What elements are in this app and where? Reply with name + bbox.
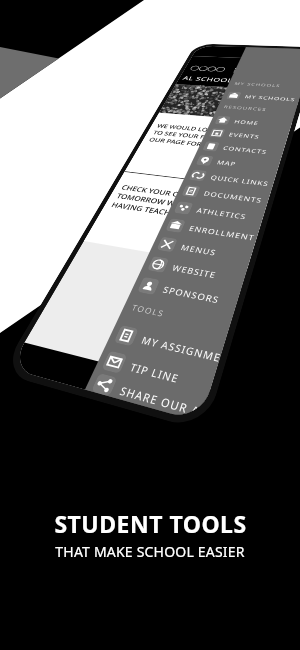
staticText: MENUS bbox=[179, 242, 218, 258]
staticText: MY SCHOOLS bbox=[233, 81, 282, 89]
button[interactable]: ATHLETICS bbox=[167, 197, 266, 228]
button[interactable]: Open navigation menu bbox=[232, 66, 249, 75]
staticText: STUDENT TOOLS bbox=[54, 508, 247, 539]
staticText: OUR PAGE FOR LATEST bbox=[147, 136, 232, 151]
staticText: SPONSORS bbox=[161, 283, 222, 306]
button[interactable]: DOCUMENTS bbox=[175, 181, 271, 209]
staticText: MAP bbox=[216, 158, 238, 167]
staticText: MY ASSIGNMENTS bbox=[139, 333, 222, 364]
button[interactable]: MENUS bbox=[150, 232, 254, 268]
staticText: WE WOULD LOVE TO LOVE bbox=[155, 122, 251, 137]
button[interactable]: TIP LINE bbox=[93, 344, 216, 401]
staticText: HAVING TEACHER'S bbox=[109, 200, 190, 220]
staticText: ENROLLMENT bbox=[188, 223, 257, 243]
staticText: TOOLS bbox=[129, 302, 166, 320]
button[interactable]: WEBSITE bbox=[140, 251, 247, 291]
staticText: ATHLETICS bbox=[195, 205, 248, 221]
staticText: THAT MAKE SCHOOL EASIER bbox=[55, 542, 245, 561]
button[interactable]: HOME bbox=[209, 113, 293, 132]
staticText: TIP LINE bbox=[128, 359, 182, 386]
staticText: AL SCHOOLS bbox=[181, 74, 240, 84]
button[interactable]: SPONSORS bbox=[130, 272, 241, 315]
staticText: EVENTS bbox=[228, 131, 261, 140]
staticText: CHECK YOUR CALENDARS bbox=[120, 183, 223, 205]
button[interactable]: SHARE OUR APP bbox=[85, 371, 207, 422]
button[interactable]: CONTACTS bbox=[197, 138, 285, 160]
staticText: GENERAL bbox=[232, 175, 265, 183]
staticText: DOCUMENTS bbox=[202, 189, 264, 205]
staticText: SHARE OUR APP bbox=[118, 382, 206, 420]
button[interactable]: ENROLLMENT bbox=[159, 214, 260, 247]
staticText: QUICK LINKS bbox=[209, 173, 270, 188]
button[interactable]: QUICK LINKS bbox=[183, 166, 276, 192]
staticText: HOME bbox=[233, 118, 260, 126]
button[interactable]: MAP bbox=[190, 152, 280, 176]
staticText: MY SCHOOLS bbox=[244, 93, 296, 102]
staticText: RESOURCES bbox=[223, 104, 268, 113]
button[interactable]: EVENTS bbox=[203, 125, 289, 146]
staticText: TO SEE YOUR FACES, LIKE bbox=[151, 129, 244, 144]
staticText: TOMORROW WE WILL BE bbox=[115, 191, 216, 214]
staticText: WEBSITE bbox=[171, 262, 219, 280]
staticText: GENERAL bbox=[204, 248, 241, 261]
staticText: 6:34 bbox=[244, 50, 260, 55]
button[interactable]: MY ASSIGNMENTS bbox=[106, 319, 225, 371]
button[interactable]: MY SCHOOLS bbox=[221, 89, 300, 105]
staticText: CONTACTS bbox=[222, 144, 268, 155]
